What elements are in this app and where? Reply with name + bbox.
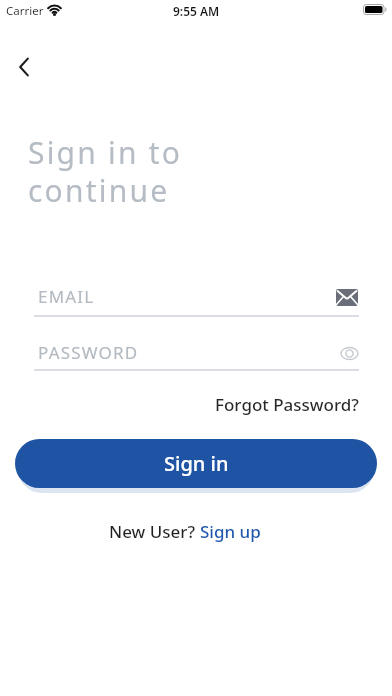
button[interactable]: Sign up	[200, 520, 261, 543]
button[interactable]: PASSWORD	[34, 335, 359, 371]
staticText: Sign in	[164, 450, 229, 477]
button[interactable]: EMAIL	[34, 280, 359, 317]
staticText: PASSWORD	[38, 341, 139, 364]
staticText: 9:55 AM	[173, 3, 220, 19]
staticText: New User?	[109, 520, 200, 543]
staticText: Carrier	[6, 3, 44, 19]
button[interactable]	[8, 51, 40, 83]
button[interactable]: Sign in	[15, 439, 377, 488]
staticText: Sign in to continue	[28, 132, 183, 211]
button[interactable]: Forgot Password?	[215, 393, 359, 416]
staticText: EMAIL	[38, 285, 95, 308]
